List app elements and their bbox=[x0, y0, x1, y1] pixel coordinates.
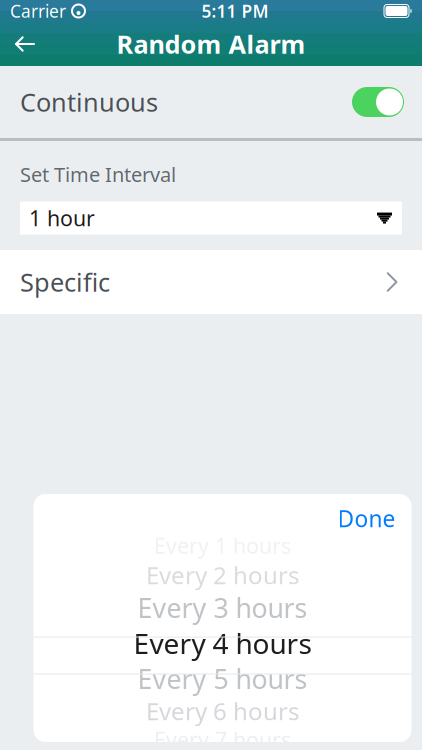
button[interactable]: Done bbox=[321, 493, 411, 543]
staticText: Every 1 hours bbox=[154, 531, 291, 560]
staticText: Every 2 hours bbox=[146, 559, 299, 591]
button[interactable]: Specific bbox=[0, 250, 422, 314]
staticText: Done bbox=[337, 503, 395, 533]
staticText: Continuous bbox=[20, 85, 158, 119]
staticText: Every 7 hours bbox=[154, 725, 291, 750]
staticText: Every 4 hours bbox=[133, 624, 311, 662]
staticText: Every 6 hours bbox=[146, 695, 299, 727]
button[interactable]: 1 hour bbox=[20, 202, 402, 235]
staticText: Every 3 hours bbox=[137, 590, 307, 625]
staticText: Set Time Interval bbox=[20, 161, 176, 188]
staticText: 1 hour bbox=[29, 204, 95, 232]
staticText: Every 5 hours bbox=[137, 661, 307, 696]
staticText: Specific bbox=[20, 265, 110, 299]
staticText: Random Alarm bbox=[116, 27, 305, 61]
button[interactable]: Continuous bbox=[0, 66, 422, 138]
button[interactable]: Back bbox=[0, 22, 50, 66]
staticText: Carrier bbox=[10, 0, 66, 22]
staticText: 5:11 PM bbox=[201, 0, 268, 22]
